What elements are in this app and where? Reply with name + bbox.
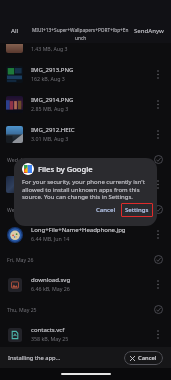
staticText: All — [11, 27, 19, 35]
button[interactable]: More options — [151, 92, 165, 116]
staticText: Wed, Jun 14 — [7, 156, 36, 163]
staticText: 1.92 MB, Jun 14 — [31, 185, 70, 192]
button[interactable]: Cancel — [92, 203, 120, 217]
button[interactable]: Select all — [151, 252, 165, 266]
button[interactable]: More options — [151, 222, 165, 246]
staticText: IMG_2913.PNG — [31, 66, 74, 74]
staticText: Installing the app... — [8, 354, 61, 362]
staticText: IMG_2914.PNG — [31, 96, 74, 104]
button[interactable]: Back — [0, 18, 29, 43]
staticText: IMG_2912.HEIC — [31, 126, 75, 134]
staticText: 358 kB, May 25 — [31, 335, 69, 342]
button[interactable]: Settings — [121, 203, 153, 217]
button[interactable]: contacts.vcf — [0, 319, 171, 349]
staticText: 3.01 MB, Aug 3 — [31, 135, 69, 142]
staticText: Settings — [125, 206, 149, 214]
button[interactable]: Long+File+Name+Headphone.jpg — [0, 219, 171, 249]
button[interactable]: Select all — [151, 302, 165, 316]
staticText: Wallpaper_AMOLED.png — [31, 176, 100, 184]
button[interactable]: Select all — [151, 152, 165, 166]
staticText: Files by Google — [38, 164, 93, 174]
button[interactable]: More options — [151, 122, 165, 146]
staticText: Cancel — [138, 354, 157, 362]
button[interactable]: IMG_2913.PNG — [0, 59, 171, 89]
staticText: 6.46 kB, May 26 — [31, 285, 70, 292]
staticText: download.svg — [31, 276, 71, 284]
staticText: Long+File+Name+Headphone.jpg — [31, 226, 126, 234]
button[interactable]: More options — [151, 62, 165, 86]
button[interactable]: SendAnyw — [127, 18, 171, 43]
staticText: Thu, May 25 — [7, 306, 37, 313]
button[interactable]: More options — [151, 322, 165, 346]
staticText: contacts.vcf — [31, 326, 65, 334]
button[interactable]: Cancel — [124, 351, 163, 365]
button[interactable]: Wallpaper_AMOLED.png — [0, 169, 171, 199]
button[interactable]: IMG_2914.PNG — [0, 89, 171, 119]
staticText: Cancel — [96, 206, 116, 214]
button[interactable]: More options — [151, 272, 165, 296]
staticText: Fri, May 26 — [7, 256, 34, 263]
staticText: For your security, your phone currently … — [22, 178, 145, 200]
button[interactable]: IMG_2912.HEIC — [0, 119, 171, 149]
staticText: 162 kB, Aug 3 — [31, 75, 65, 82]
staticText: SendAnyw — [134, 27, 164, 35]
button[interactable]: More options — [151, 172, 165, 196]
staticText: 2.85 MB, Aug 3 — [31, 105, 69, 112]
staticText: MIUI+13+Super+Wallpapers+PORT+lbp+En — [32, 27, 129, 34]
staticText: 6.44 MB, Jun 14 — [31, 235, 70, 242]
staticText: unch — [75, 35, 87, 42]
button[interactable]: download.svg — [0, 269, 171, 299]
staticText: 1.43 MB, Aug 3 — [31, 45, 68, 52]
button[interactable]: Select all — [151, 202, 165, 216]
staticText: Wed, Jun 14 — [7, 206, 36, 213]
button[interactable]: 1.43 MB, Aug 3 — [0, 43, 171, 59]
